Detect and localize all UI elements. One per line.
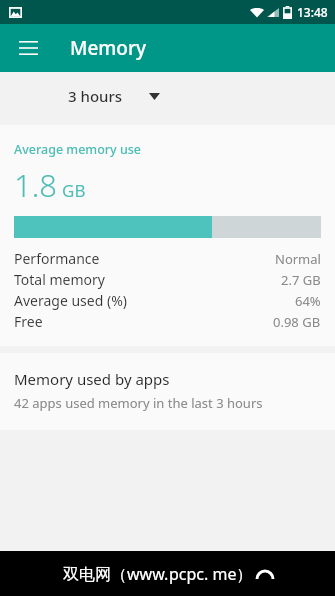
staticText: Total memory [14, 270, 105, 289]
staticText: pcpc. me） [169, 563, 253, 585]
staticText: 64% [295, 292, 321, 310]
staticText: Average memory use [14, 141, 142, 158]
staticText: Free [14, 312, 43, 331]
staticText: 0.98 GB [273, 313, 321, 331]
staticText: Memory [70, 35, 147, 61]
staticText: 双电网（www. [63, 563, 169, 585]
staticText: Normal [275, 250, 321, 268]
staticText: 2.7 GB [281, 271, 321, 289]
button[interactable]: Memory used by apps [0, 353, 335, 430]
staticText: Memory used by apps [14, 369, 170, 389]
button[interactable]: 3 hours [60, 80, 168, 112]
staticText: 3 hours [68, 86, 123, 106]
staticText: 13:48 [297, 4, 328, 20]
button[interactable]: Open navigation drawer [8, 28, 48, 68]
staticText: Average used (%) [14, 291, 127, 310]
staticText: GB [62, 179, 86, 202]
staticText: 42 apps used memory in the last 3 hours [14, 394, 263, 412]
staticText: Performance [14, 249, 100, 268]
button[interactable]: Average memory use [0, 125, 335, 346]
staticText: 1.8 [14, 164, 57, 206]
